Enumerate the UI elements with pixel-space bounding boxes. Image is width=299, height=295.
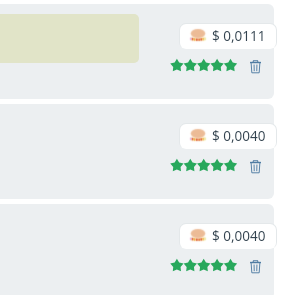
staticText: $ 0,0111	[212, 27, 266, 45]
button[interactable]: Delete	[246, 257, 264, 275]
button[interactable]: Rating 5 of 5	[169, 257, 239, 275]
button[interactable]: Delete	[246, 57, 264, 75]
button[interactable]: Rating 5 of 5	[169, 57, 239, 75]
button[interactable]: $ 0,0040	[180, 124, 276, 149]
button[interactable]	[0, 104, 274, 199]
button[interactable]	[0, 4, 274, 99]
button[interactable]: Rating 5 of 5	[169, 157, 239, 175]
button[interactable]	[0, 204, 274, 295]
button[interactable]: $ 0,0040	[180, 224, 276, 249]
button[interactable]: Delete	[246, 157, 264, 175]
button[interactable]: $ 0,0111	[180, 24, 276, 49]
staticText: $ 0,0040	[212, 127, 266, 145]
staticText: $ 0,0040	[212, 227, 266, 245]
